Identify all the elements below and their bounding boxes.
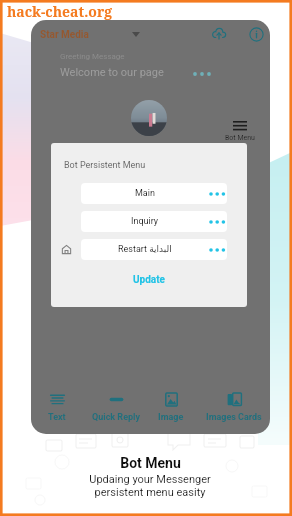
staticText: Welcome to our page (60, 66, 164, 79)
button[interactable]: Main (81, 183, 227, 204)
staticText: Bot Menu (225, 134, 255, 142)
staticText: Updaing your Messenger persistent menu e… (89, 473, 211, 499)
button[interactable]: Inquiry (81, 211, 227, 232)
button[interactable]: Images Cards (199, 392, 269, 423)
button[interactable]: Star Media (38, 27, 91, 43)
staticText: Update (133, 274, 165, 286)
staticText: Quick Reply (92, 412, 140, 423)
button[interactable]: Text (31, 392, 92, 423)
button[interactable]: Info (247, 25, 265, 43)
staticText: Bot Persistent Menu (64, 160, 146, 171)
staticText: Main (135, 188, 155, 199)
button[interactable]: Update (125, 271, 173, 289)
staticText: hack-cheat.org (7, 2, 113, 21)
button[interactable]: Upload (210, 25, 228, 43)
button[interactable]: Quick Reply (81, 392, 151, 423)
staticText: Images Cards (206, 412, 262, 423)
staticText: Restart البداية (118, 244, 172, 255)
staticText: Text (48, 412, 66, 423)
staticText: Image (158, 412, 184, 423)
staticText: Inquiry (131, 216, 159, 227)
staticText: Greeting Message (60, 52, 125, 61)
button[interactable]: Restart البداية (81, 239, 227, 260)
button[interactable]: Image (136, 392, 206, 423)
staticText: Star Media (40, 29, 89, 41)
staticText: Bot Menu (120, 455, 181, 471)
button[interactable]: Bot Menu (220, 121, 260, 142)
